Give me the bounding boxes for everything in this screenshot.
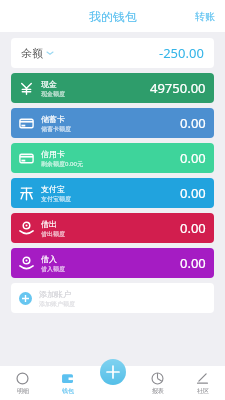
staticText: 我的钱包	[89, 9, 137, 24]
staticText: 转账	[195, 10, 215, 23]
staticText: 支付宝额度	[41, 195, 71, 203]
button[interactable]: 转账	[185, 4, 225, 29]
staticText: 现金额度	[41, 90, 65, 98]
staticText: 社区	[197, 387, 209, 395]
staticText: 借出额度	[41, 230, 65, 238]
button[interactable]: 钱包	[45, 366, 90, 400]
staticText: 0.00	[180, 184, 206, 202]
staticText: 借入额度	[41, 265, 65, 273]
staticText: 添加账户额度	[39, 300, 75, 308]
button[interactable]: 储蓄卡	[11, 108, 214, 138]
button[interactable]: 支付宝	[11, 178, 214, 208]
staticText: 储蓄卡额度	[41, 125, 71, 133]
button[interactable]: 借入	[11, 248, 214, 278]
staticText: 剩余额度0.00元	[41, 160, 83, 168]
staticText: 信用卡	[41, 149, 65, 159]
button[interactable]: 信用卡	[11, 143, 214, 173]
staticText: 49750.00	[150, 79, 206, 97]
staticText: -250.00	[159, 44, 204, 62]
staticText: 0.00	[180, 219, 206, 237]
staticText: 余额	[21, 46, 43, 60]
staticText: 支付宝	[41, 184, 65, 194]
staticText: 0.00	[180, 149, 206, 167]
staticText: 0.00	[180, 254, 206, 272]
button[interactable]: 余额	[11, 38, 214, 68]
staticText: 报表	[152, 387, 164, 395]
button[interactable]: 现金	[11, 73, 214, 103]
staticText: 储蓄卡	[41, 114, 65, 124]
staticText: 钱包	[62, 387, 74, 395]
staticText: 现金	[41, 79, 57, 89]
staticText: 借出	[41, 219, 57, 229]
button[interactable]: 借出	[11, 213, 214, 243]
staticText: 借入	[41, 254, 57, 264]
button[interactable]: 社区	[180, 366, 225, 400]
button[interactable]: 报表	[135, 366, 180, 400]
staticText: 0.00	[180, 114, 206, 132]
button[interactable]: 添加账户	[11, 283, 214, 313]
button[interactable]: Add transaction	[100, 359, 126, 385]
button[interactable]: 明细	[0, 366, 45, 400]
staticText: 明细	[17, 387, 29, 395]
staticText: 添加账户	[39, 289, 71, 299]
